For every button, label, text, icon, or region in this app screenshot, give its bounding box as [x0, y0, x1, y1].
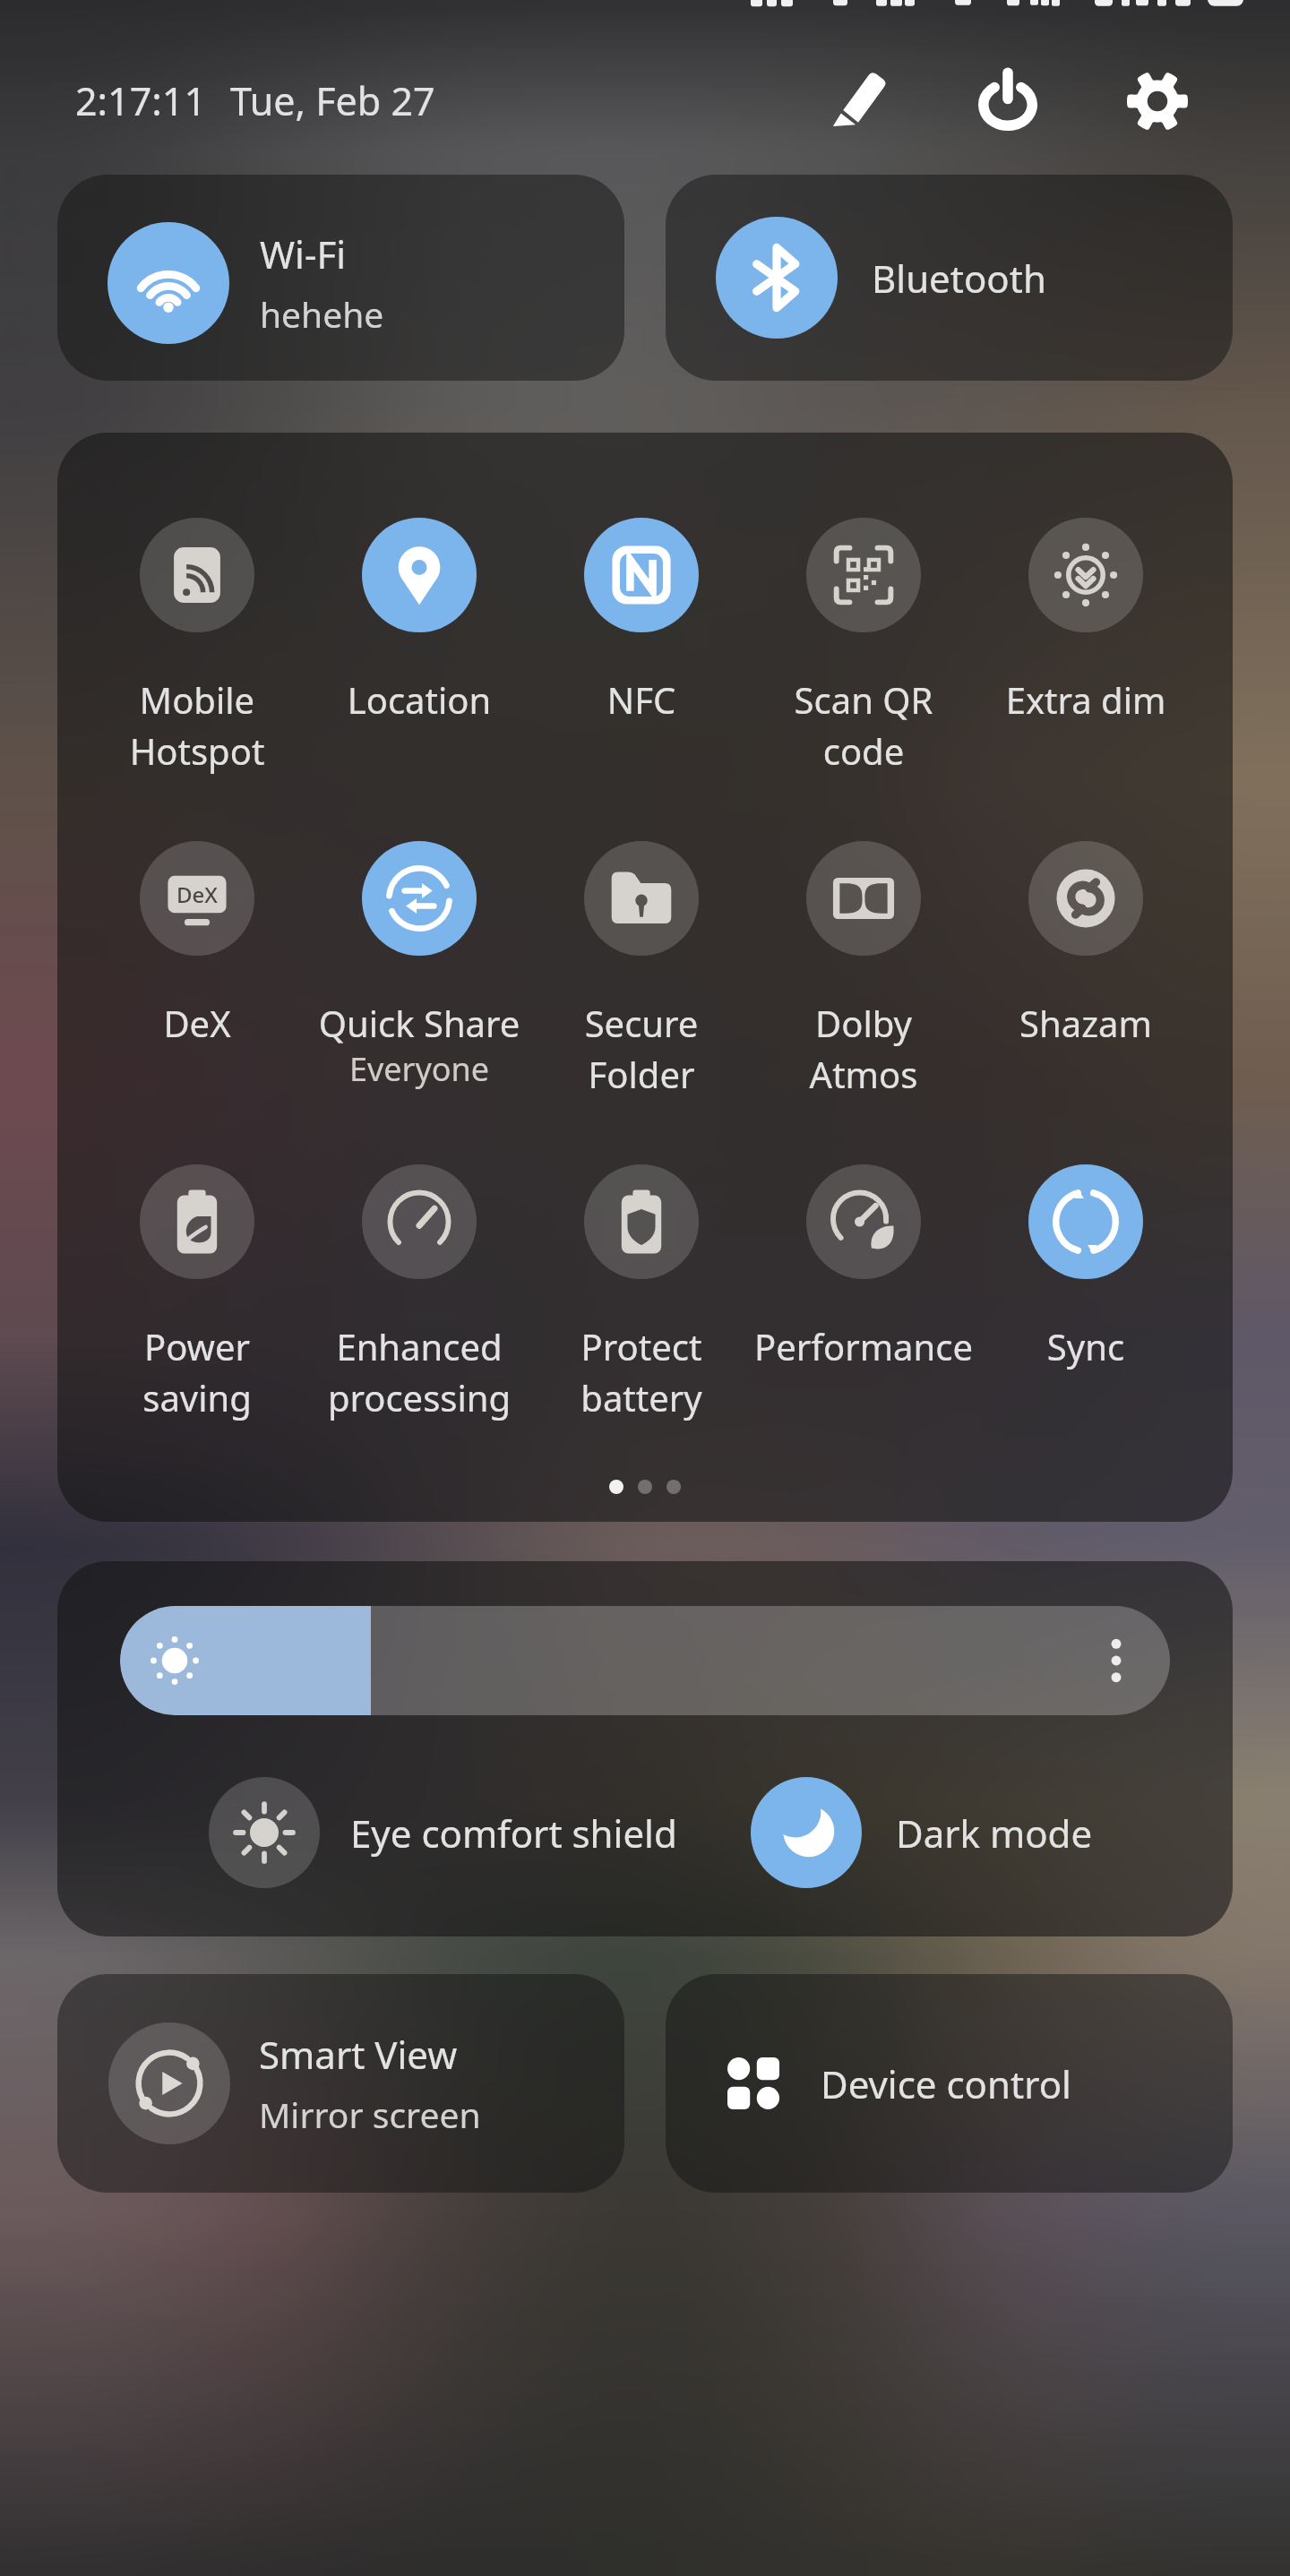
staticText: Device control: [821, 2058, 1071, 2109]
staticText: Performance: [752, 1322, 975, 1370]
staticText: DeX: [176, 880, 218, 909]
button[interactable]: NFC: [530, 518, 752, 724]
button[interactable]: Shazam: [975, 841, 1197, 1047]
button[interactable]: Dolby Atmos: [752, 841, 975, 1098]
staticText: hehehe: [260, 290, 384, 338]
staticText: Extra dim: [975, 675, 1197, 724]
button[interactable]: Bluetooth: [666, 175, 1233, 381]
staticText: Dark mode: [896, 1807, 1093, 1859]
staticText: Sync: [975, 1322, 1197, 1370]
button[interactable]: Device control: [666, 1974, 1233, 2193]
staticText: Power saving: [86, 1322, 308, 1421]
button[interactable]: Power off: [967, 60, 1049, 142]
button[interactable]: Power saving: [86, 1164, 308, 1421]
button[interactable]: Secure Folder: [530, 841, 752, 1098]
button[interactable]: Quick Share: [308, 841, 530, 1091]
button[interactable]: Scan QR code: [752, 518, 975, 775]
button[interactable]: Dark mode: [751, 1777, 1093, 1888]
staticText: Dolby Atmos: [752, 999, 975, 1098]
button[interactable]: Sync: [975, 1164, 1197, 1370]
staticText: Tue, Feb 27: [230, 74, 435, 127]
staticText: Everyone: [308, 1047, 530, 1091]
staticText: Enhanced processing: [308, 1322, 530, 1421]
staticText: Eye comfort shield: [350, 1807, 677, 1859]
staticText: Scan QR code: [752, 675, 975, 775]
button[interactable]: Location: [308, 518, 530, 724]
staticText: DeX: [86, 999, 308, 1047]
staticText: NFC: [530, 675, 752, 724]
staticText: Secure Folder: [530, 999, 752, 1098]
staticText: Protect battery: [530, 1322, 752, 1421]
staticText: Smart View: [259, 2029, 458, 2080]
button[interactable]: Settings: [1116, 60, 1199, 142]
staticText: Mobile Hotspot: [86, 675, 308, 775]
button[interactable]: Smart View: [57, 1974, 624, 2193]
staticText: Mirror screen: [259, 2091, 481, 2138]
button[interactable]: Extra dim: [975, 518, 1197, 724]
staticText: Wi-Fi: [260, 228, 347, 279]
button[interactable]: Protect battery: [530, 1164, 752, 1421]
staticText: 2:17:11: [75, 74, 207, 127]
button[interactable]: Performance: [752, 1164, 975, 1370]
button[interactable]: DeX: [86, 841, 308, 1047]
staticText: Shazam: [975, 999, 1197, 1047]
button[interactable]: Enhanced processing: [308, 1164, 530, 1421]
button[interactable]: Edit: [817, 58, 899, 141]
staticText: Quick Share: [308, 999, 530, 1047]
staticText: Bluetooth: [872, 253, 1046, 304]
button[interactable]: Wi-Fi: [57, 175, 624, 381]
staticText: Location: [308, 675, 530, 724]
button[interactable]: [120, 1606, 1170, 1715]
button[interactable]: Mobile Hotspot: [86, 518, 308, 775]
button[interactable]: Eye comfort shield: [209, 1777, 677, 1888]
